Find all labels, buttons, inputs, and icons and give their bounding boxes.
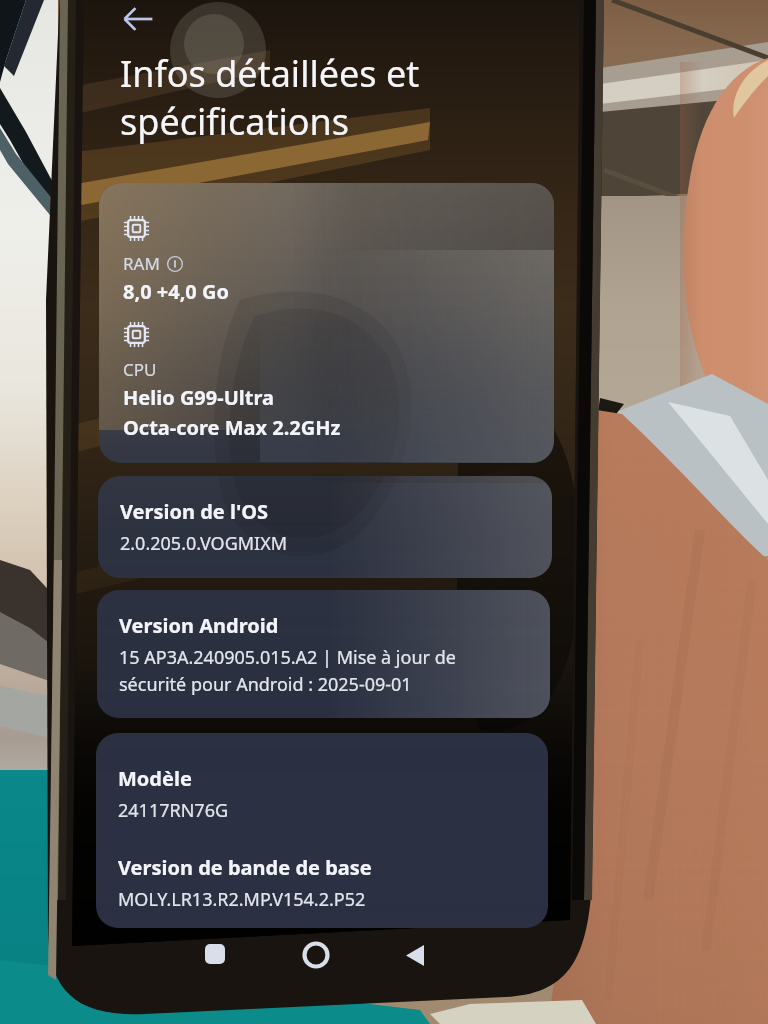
staticText: RAM <box>123 252 160 275</box>
staticText: Version Android <box>119 612 279 639</box>
staticText: CPU <box>123 358 157 381</box>
button[interactable]: Version de l'OS <box>98 476 552 578</box>
staticText: 24117RN76G <box>118 798 229 823</box>
staticText: Version de bande de base <box>118 854 372 881</box>
button[interactable]: Back <box>113 0 163 44</box>
staticText: 2.0.205.0.VOGMIXM <box>120 531 288 556</box>
staticText: 15 AP3A.240905.015.A2 | Mise à jour de s… <box>119 645 456 696</box>
staticText: Infos détaillées et spécifications <box>120 49 570 145</box>
staticText: Version de l'OS <box>120 498 269 525</box>
staticText: Modèle <box>118 765 192 792</box>
button[interactable]: Version Android <box>97 590 550 718</box>
staticText: 8,0 +4,0 Go <box>123 278 229 305</box>
staticText: MOLY.LR13.R2.MP.V154.2.P52 <box>118 887 366 912</box>
staticText: Helio G99-Ultra Octa-core Max 2.2GHz <box>123 384 341 441</box>
button[interactable]: Modèle <box>96 733 548 928</box>
button[interactable]: RAM <box>99 183 554 463</box>
